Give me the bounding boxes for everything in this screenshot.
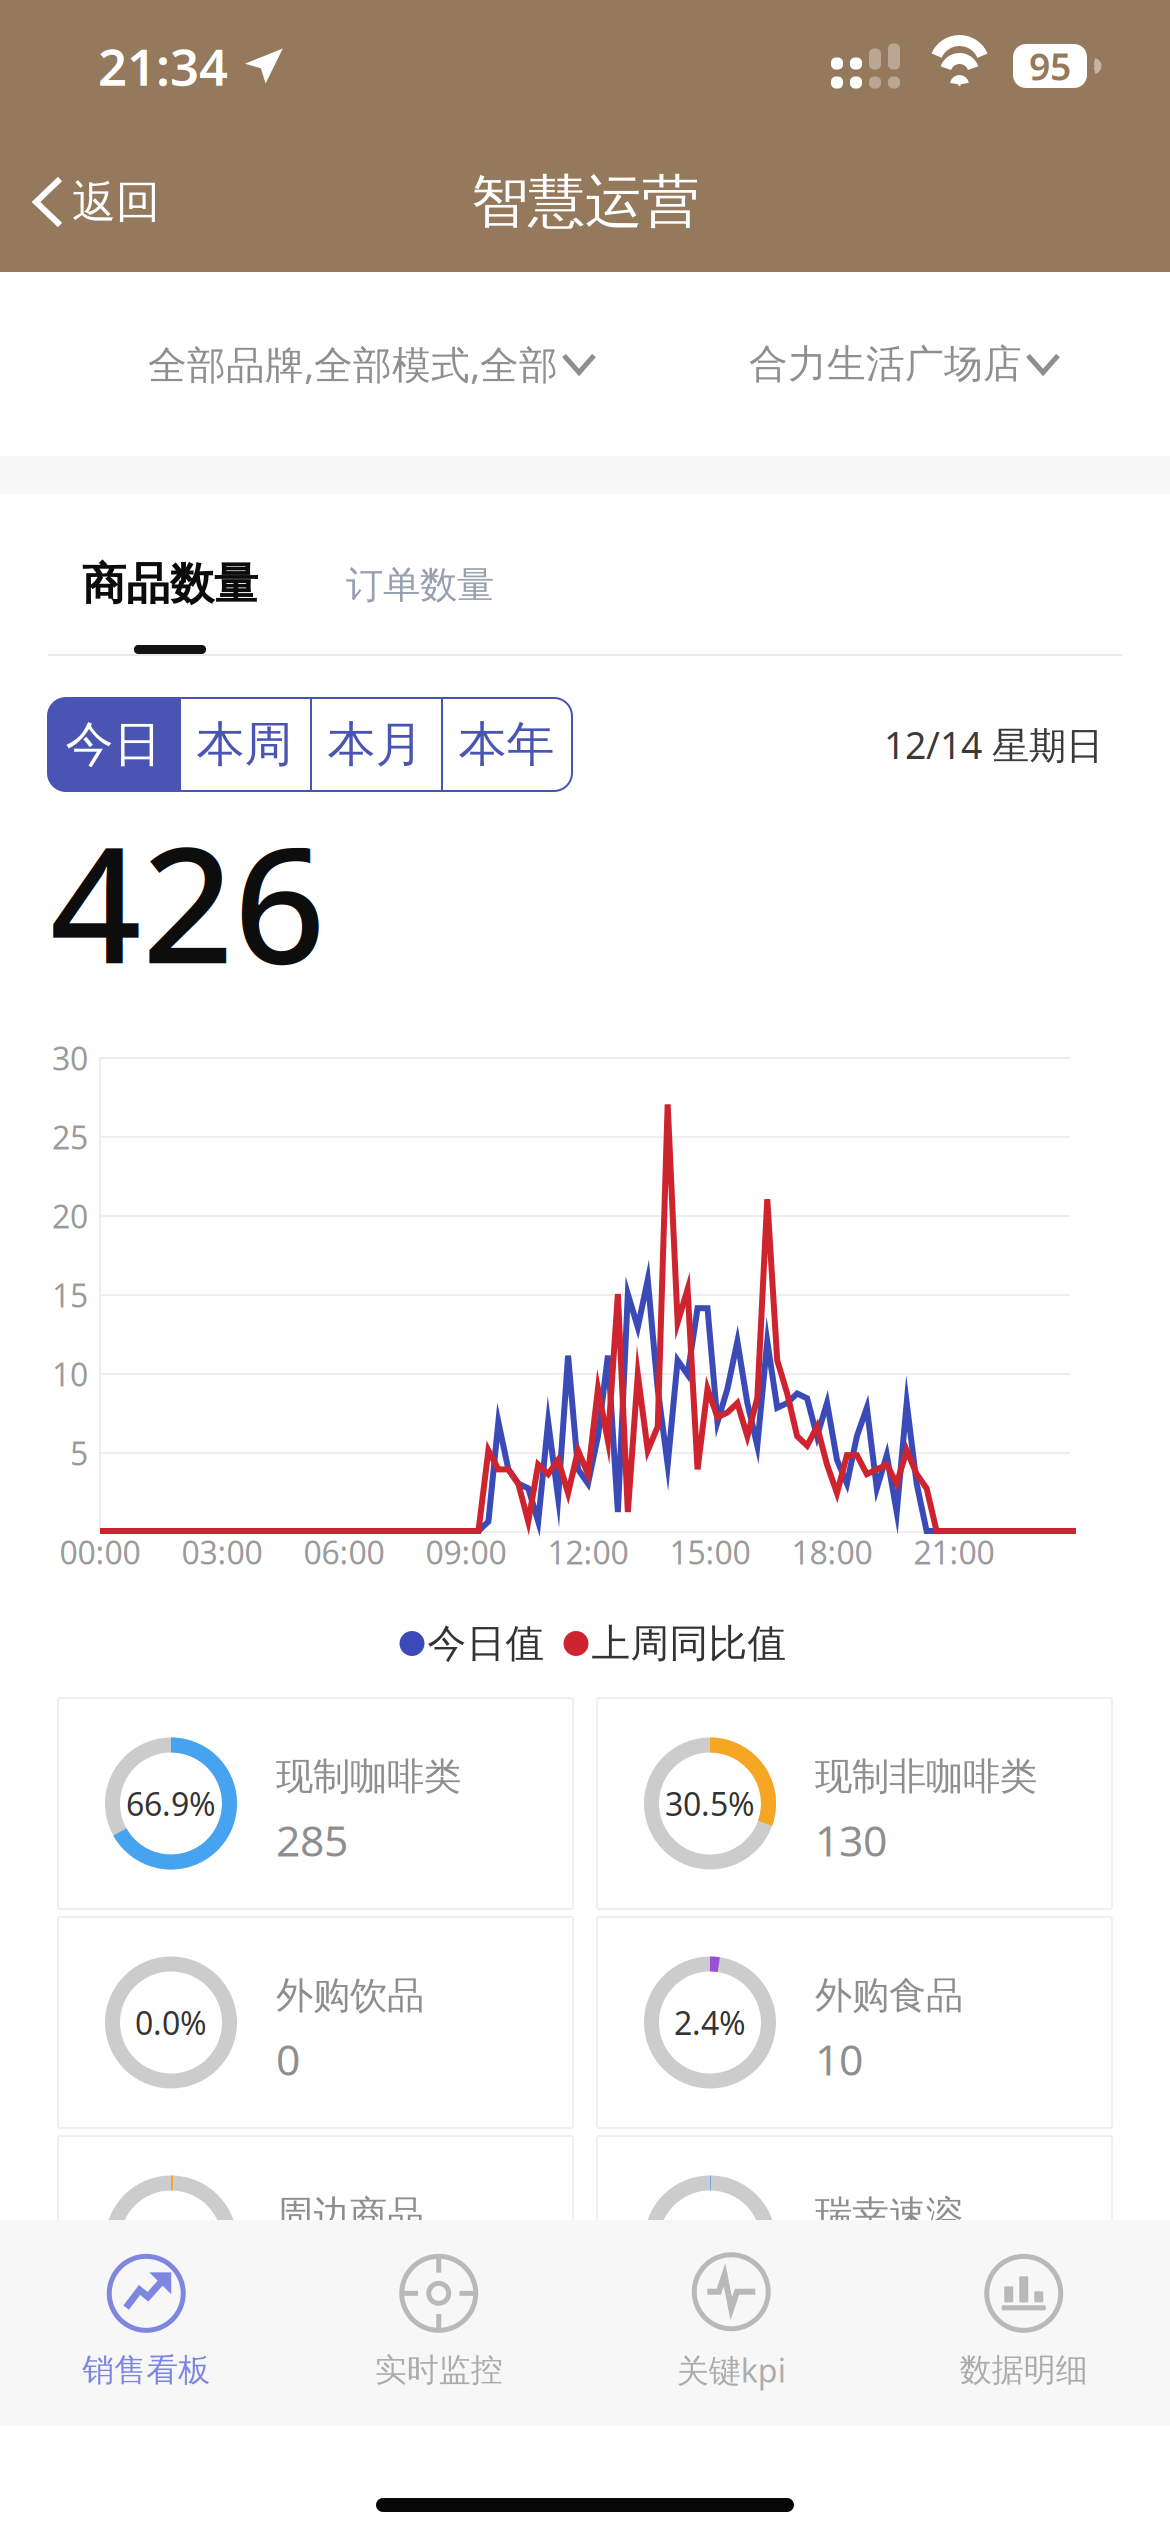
button[interactable]: 数据明细 — [877, 2218, 1170, 2428]
button[interactable]: 订单数量 — [302, 494, 538, 654]
staticText: 0 — [276, 2030, 300, 2087]
staticText: 5 — [70, 1432, 88, 1474]
button[interactable]: 本月 — [310, 698, 441, 791]
staticText: 关键kpi — [677, 2349, 786, 2391]
staticText: 商品数量 — [82, 557, 258, 611]
staticText: 今日 — [65, 715, 161, 774]
button[interactable]: 今日 — [48, 698, 179, 791]
button[interactable]: 商品数量 — [0, 494, 302, 654]
button[interactable]: 0.2% — [597, 2136, 1112, 2347]
staticText: 外购饮品 — [276, 1973, 424, 2018]
staticText: 本月 — [327, 715, 423, 774]
staticText: 0.5% — [135, 2220, 207, 2263]
staticText: 全部品牌,全部模式,全部 — [148, 338, 558, 390]
staticText: 00:00 — [59, 1531, 140, 1573]
staticText: 30 — [52, 1037, 88, 1079]
button[interactable]: 本年 — [441, 698, 572, 791]
staticText: 25 — [52, 1116, 88, 1158]
staticText: 285 — [276, 1811, 348, 1868]
staticText: 合力生活广场店 — [749, 340, 1022, 388]
staticText: 实时监控 — [375, 2350, 503, 2390]
button[interactable]: 实时监控 — [292, 2218, 585, 2428]
staticText: 06:00 — [303, 1531, 384, 1573]
staticText: 15:00 — [669, 1531, 750, 1573]
button[interactable]: 返回 — [0, 147, 196, 257]
staticText: 数据明细 — [960, 2350, 1088, 2390]
button[interactable]: 本周 — [179, 698, 310, 791]
button[interactable]: 全部品牌,全部模式,全部 — [148, 309, 594, 419]
staticText: 0.2% — [674, 2220, 746, 2263]
staticText: 09:00 — [425, 1531, 506, 1573]
staticText: 130 — [815, 1811, 887, 1868]
button[interactable]: 合力生活广场店 — [749, 309, 1058, 419]
staticText: 10 — [52, 1353, 88, 1395]
staticText: 今日值 — [427, 1620, 544, 1667]
staticText: 03:00 — [181, 1531, 262, 1573]
button[interactable]: 销售看板 — [0, 2218, 292, 2428]
staticText: 本年 — [458, 715, 554, 774]
staticText: 21:34 — [98, 32, 228, 100]
staticText: 30.5% — [665, 1782, 755, 1825]
staticText: 18:00 — [791, 1531, 872, 1573]
button[interactable]: 关键kpi — [585, 2217, 877, 2429]
button[interactable]: 66.9% — [58, 1698, 573, 1909]
staticText: 订单数量 — [346, 562, 494, 608]
staticText: 21:00 — [913, 1531, 994, 1573]
staticText: 20 — [52, 1195, 88, 1237]
button[interactable]: 30.5% — [597, 1698, 1112, 1909]
staticText: 现制咖啡类 — [276, 1754, 461, 1799]
staticText: 426 — [50, 795, 326, 1007]
staticText: 95 — [1029, 41, 1071, 91]
staticText: 12/14 星期日 — [884, 720, 1103, 769]
staticText: 返回 — [72, 175, 160, 229]
staticText: 10 — [815, 2030, 863, 2087]
staticText: 12:00 — [547, 1531, 628, 1573]
staticText: 现制非咖啡类 — [815, 1754, 1037, 1799]
staticText: 外购食品 — [815, 1973, 963, 2018]
staticText: 15 — [52, 1274, 88, 1316]
staticText: 瑞幸速溶 — [815, 2192, 963, 2237]
staticText: 本周 — [196, 715, 292, 774]
staticText: 智慧运营 — [471, 167, 699, 237]
staticText: 0.0% — [135, 2001, 207, 2044]
button[interactable]: 0.5% — [58, 2136, 573, 2347]
button[interactable]: 2.4% — [597, 1917, 1112, 2128]
staticText: 周边商品 — [276, 2192, 424, 2237]
staticText: 上周同比值 — [591, 1620, 786, 1667]
staticText: 2.4% — [674, 2001, 746, 2044]
staticText: 销售看板 — [82, 2350, 210, 2390]
staticText: 66.9% — [126, 1782, 216, 1825]
button[interactable]: 0.0% — [58, 1917, 573, 2128]
